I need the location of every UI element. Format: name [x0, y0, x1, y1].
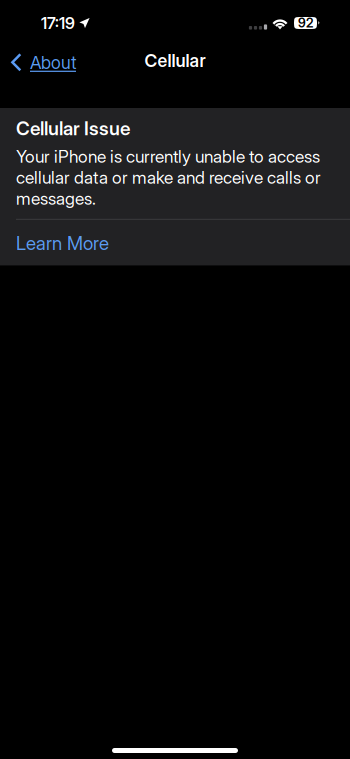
staticText: Learn More [16, 232, 109, 254]
staticText: Cellular Issue [16, 117, 130, 140]
staticText: 92 [298, 15, 313, 31]
staticText: 17:19 [41, 13, 75, 33]
button[interactable]: Learn More [0, 220, 350, 265]
staticText: Your iPhone is currently unable to acces… [16, 146, 321, 209]
staticText: About [30, 52, 76, 73]
staticText: Cellular [144, 50, 205, 71]
button[interactable]: About [0, 47, 84, 77]
